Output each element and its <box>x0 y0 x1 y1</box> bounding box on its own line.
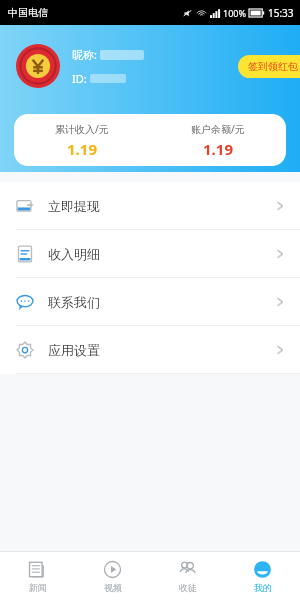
button[interactable]: 收徒 <box>150 552 225 600</box>
staticText: 联系我们 <box>48 294 100 310</box>
staticText: 100% <box>223 7 246 19</box>
staticText: 立即提现 <box>48 198 100 214</box>
staticText: 15:33 <box>268 6 294 20</box>
button[interactable]: 视频 <box>75 552 150 600</box>
button[interactable]: 账户余额/元 <box>150 114 286 166</box>
button[interactable]: 联系我们 <box>0 278 300 325</box>
button[interactable]: 我的 <box>225 552 300 600</box>
staticText: 昵称: <box>72 47 97 62</box>
staticText: ID: <box>72 71 87 86</box>
staticText: 新闻 <box>29 582 47 593</box>
staticText: 中国电信 <box>8 6 48 19</box>
staticText: 1.19 <box>203 139 233 159</box>
button[interactable]: 签到领红包 <box>238 55 300 78</box>
button[interactable]: 应用设置 <box>0 326 300 373</box>
button[interactable]: 累计收入/元 <box>14 114 150 166</box>
staticText: 1.19 <box>67 139 97 159</box>
button[interactable]: 立即提现 <box>0 182 300 229</box>
button[interactable]: 新闻 <box>0 552 75 600</box>
staticText: 我的 <box>254 582 272 593</box>
staticText: 签到领红包 <box>248 60 298 73</box>
staticText: 视频 <box>104 582 122 593</box>
staticText: 账户余额/元 <box>191 122 245 136</box>
staticText: 应用设置 <box>48 342 100 358</box>
staticText: 累计收入/元 <box>55 122 109 136</box>
button[interactable]: 收入明细 <box>0 230 300 277</box>
staticText: 收入明细 <box>48 246 100 262</box>
staticText: 收徒 <box>179 582 197 593</box>
